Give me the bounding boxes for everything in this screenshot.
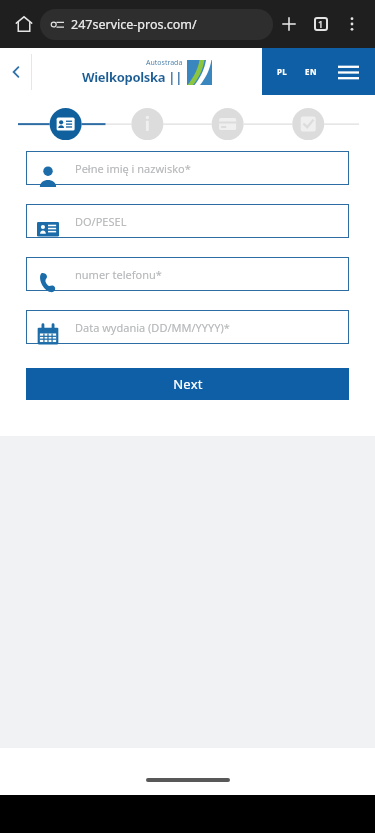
staticText: EN [305, 66, 317, 77]
button[interactable]: PL [274, 60, 291, 83]
button[interactable]: 247service-pros.com/Cennikkateg [40, 9, 273, 40]
button[interactable]: Menu [332, 56, 364, 88]
button[interactable]: Pełne imię i nazwisko* [26, 151, 349, 185]
staticText: 1 [318, 18, 324, 30]
button[interactable]: Data wydania (DD/MM/YYYY)* [26, 310, 349, 344]
staticText: 247service-pros.com/Cennikkateg [71, 16, 262, 33]
button[interactable]: EN [302, 60, 320, 83]
staticText: Pełne imię i nazwisko* [75, 161, 191, 176]
button[interactable]: Back [0, 48, 31, 95]
button[interactable]: Open tabs [305, 8, 337, 40]
staticText: Wielkopolska || [82, 68, 183, 86]
button[interactable]: Next [26, 368, 349, 400]
staticText: Next [173, 375, 203, 393]
staticText: numer telefonu* [75, 267, 162, 282]
staticText: Autostrada [146, 58, 183, 68]
button[interactable]: More options [337, 9, 367, 39]
button[interactable]: Home [8, 8, 40, 40]
staticText: DO/PESEL [75, 214, 127, 229]
button[interactable]: numer telefonu* [26, 257, 349, 291]
button[interactable]: DO/PESEL [26, 204, 349, 238]
staticText: PL [277, 66, 288, 77]
staticText: Data wydania (DD/MM/YYYY)* [75, 320, 230, 335]
button[interactable]: New tab [273, 8, 305, 40]
